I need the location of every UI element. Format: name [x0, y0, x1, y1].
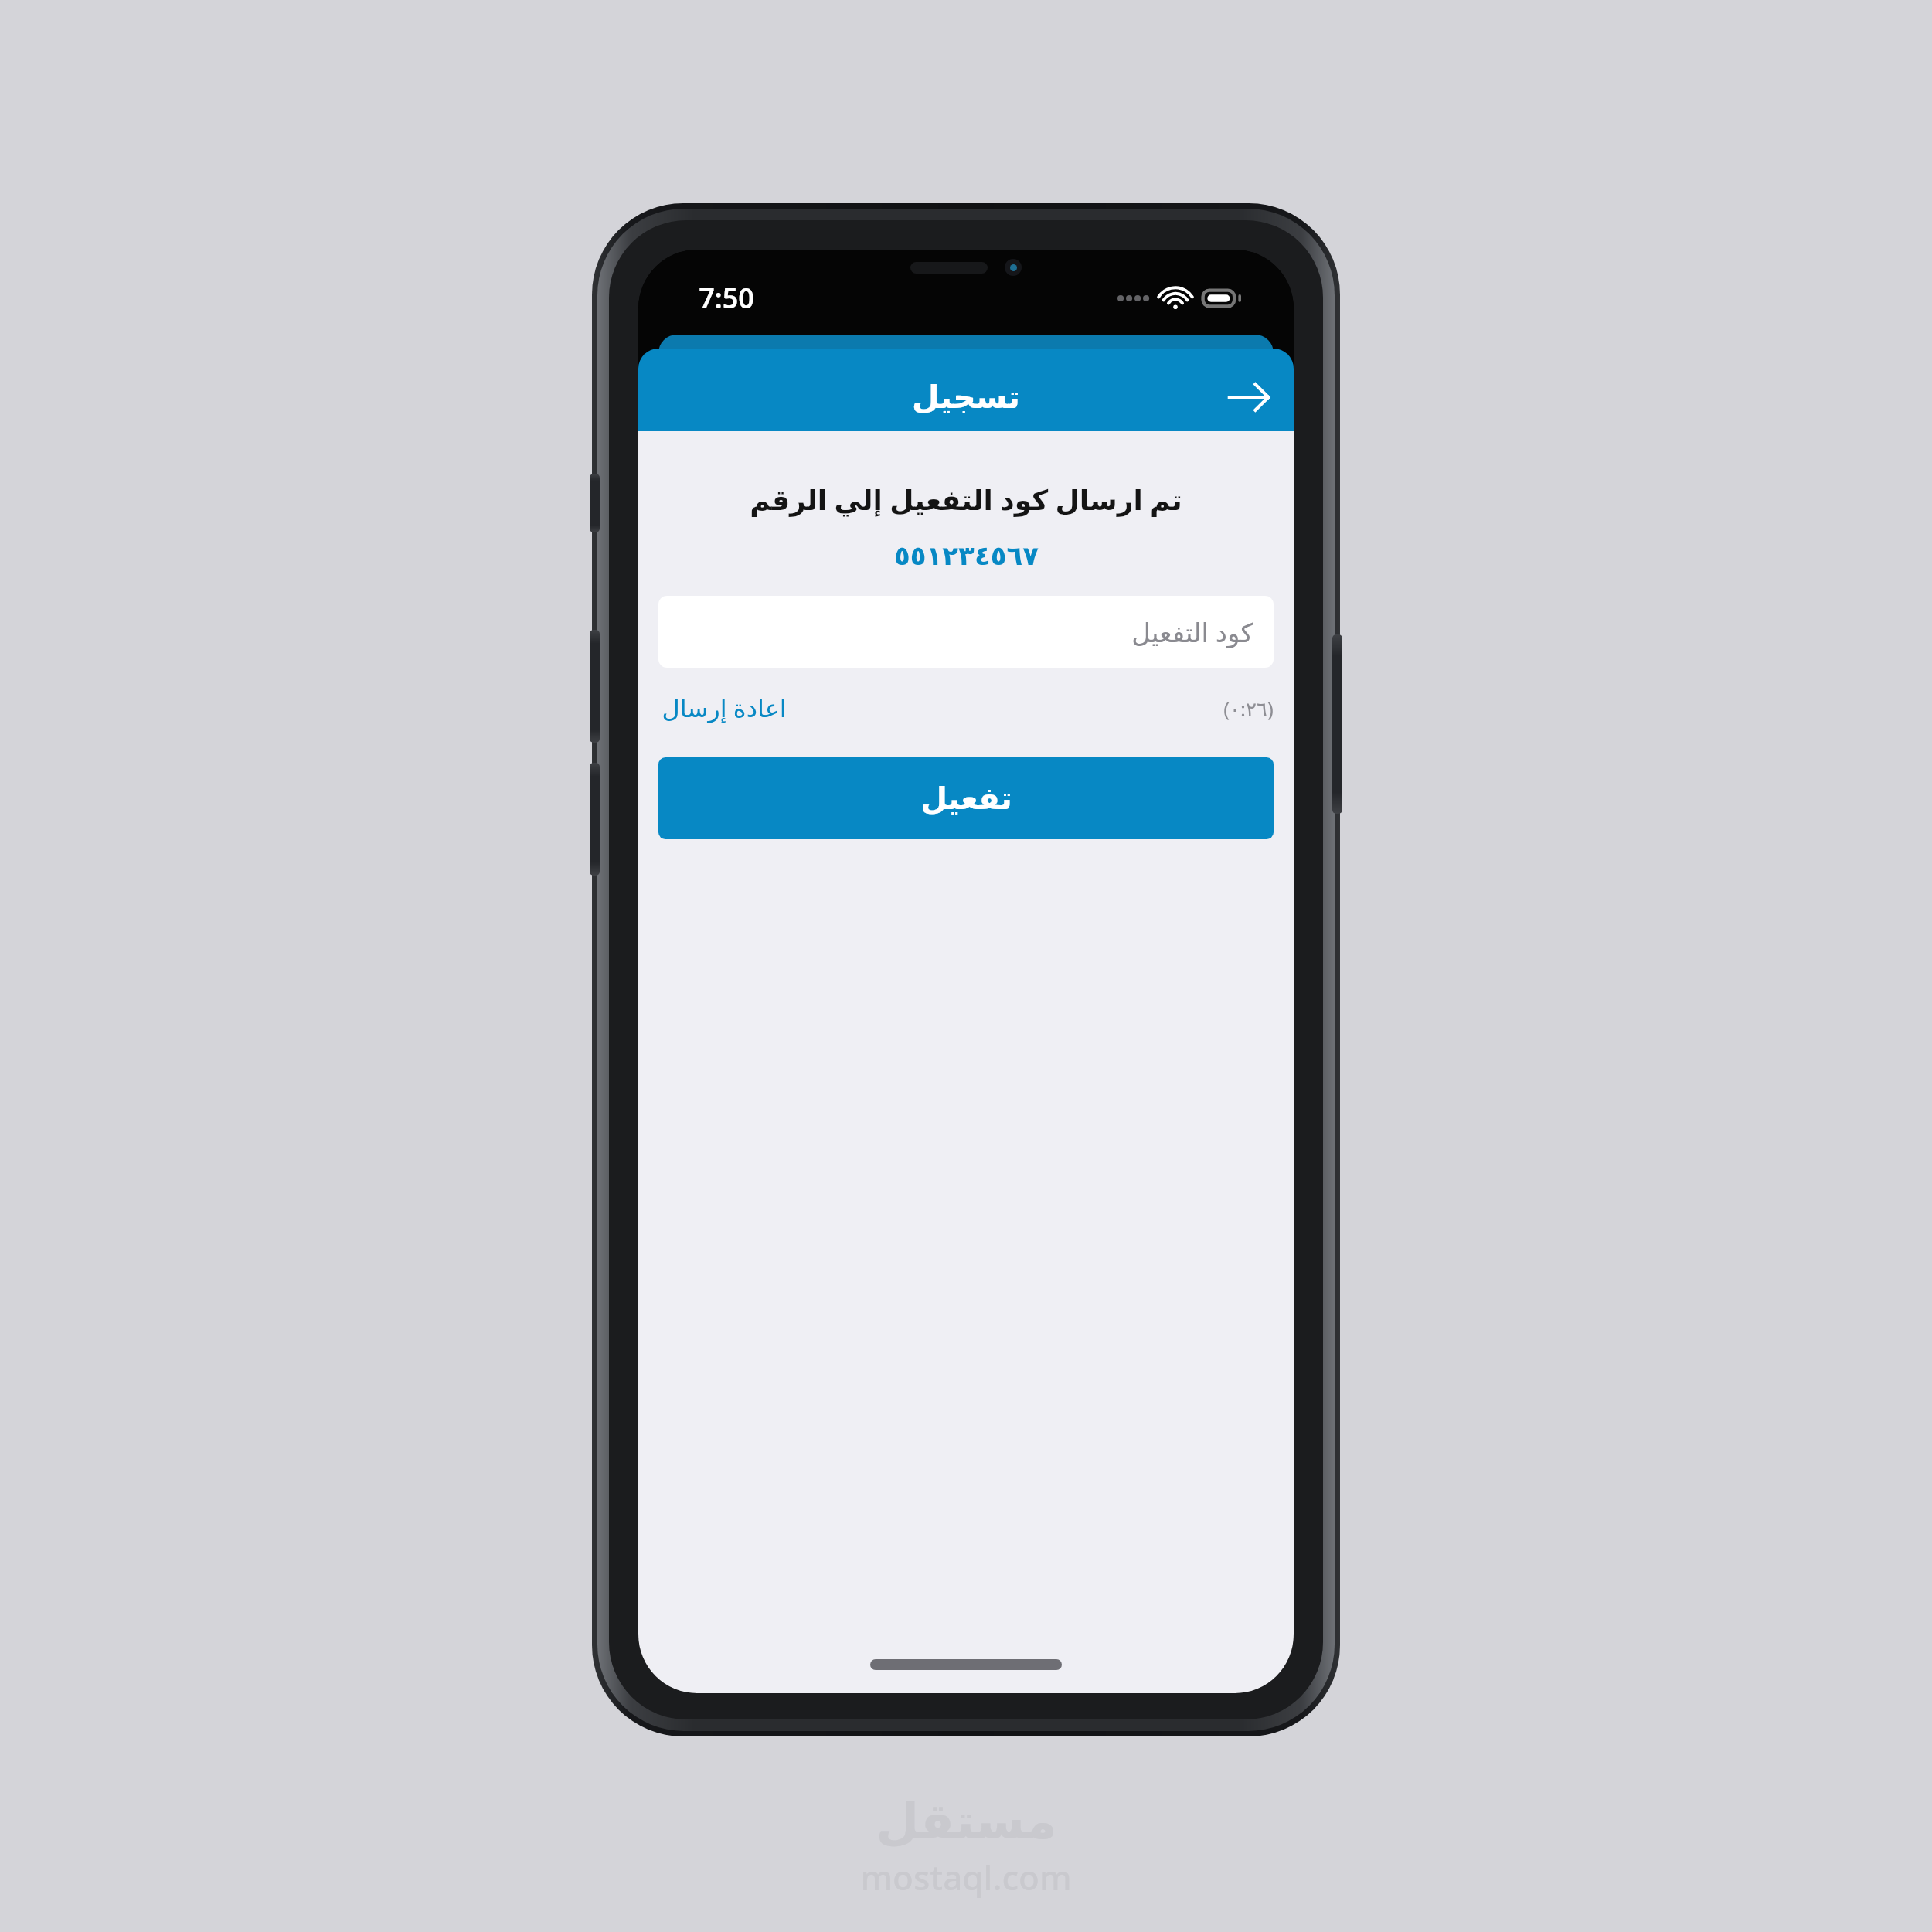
staticText: تم ارسال كود التفعيل إلي الرقم	[750, 481, 1182, 519]
button[interactable]: اعادة إرسال	[658, 686, 790, 730]
staticText: (٠:٢٦)	[1223, 695, 1274, 722]
staticText: ٥٥١٢٣٤٥٦٧	[894, 540, 1039, 571]
staticText: تسجيل	[912, 379, 1020, 416]
staticText: اعادة إرسال	[662, 691, 787, 725]
button[interactable]: كود التفعيل	[658, 596, 1274, 668]
staticText: كود التفعيل	[1131, 614, 1253, 650]
button[interactable]: Next	[1216, 365, 1281, 430]
staticText: 7:50	[699, 279, 754, 317]
staticText: مستقل	[876, 1793, 1057, 1851]
staticText: تفعيل	[920, 781, 1012, 817]
staticText: mostaql.com	[860, 1854, 1072, 1900]
button[interactable]: تفعيل	[658, 757, 1274, 839]
